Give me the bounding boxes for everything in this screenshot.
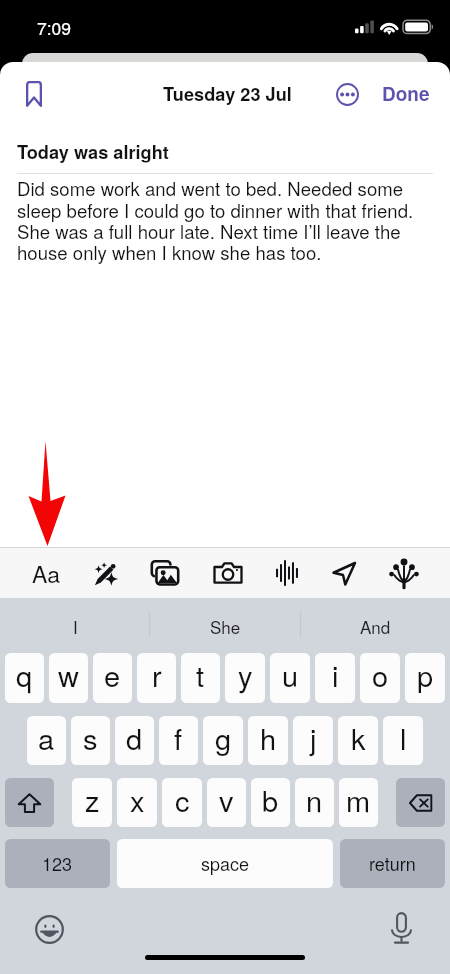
- button[interactable]: Mood: [382, 548, 426, 598]
- button[interactable]: Audio: [265, 548, 309, 598]
- button[interactable]: n: [295, 778, 334, 827]
- button[interactable]: Enhance: [84, 548, 128, 598]
- button[interactable]: Emoji: [29, 909, 69, 949]
- button[interactable]: a: [27, 716, 66, 765]
- staticText: return: [369, 850, 416, 876]
- button[interactable]: r: [137, 653, 176, 703]
- staticText: space: [201, 850, 250, 876]
- staticText: e: [104, 654, 121, 696]
- button[interactable]: 123: [5, 839, 110, 888]
- button[interactable]: u: [270, 653, 310, 703]
- staticText: s: [83, 717, 98, 759]
- staticText: o: [372, 654, 389, 696]
- staticText: Did some work and went to bed. Needed so…: [17, 175, 439, 265]
- button[interactable]: k: [338, 716, 378, 765]
- button[interactable]: return: [340, 839, 445, 888]
- button[interactable]: l: [383, 716, 423, 765]
- staticText: 7:09: [37, 15, 72, 40]
- button[interactable]: Camera: [206, 548, 250, 598]
- button[interactable]: space: [117, 839, 333, 888]
- staticText: Tuesday 23 Jul: [163, 81, 292, 107]
- button[interactable]: w: [49, 653, 88, 703]
- staticText: y: [238, 654, 253, 696]
- button[interactable]: And: [300, 598, 450, 653]
- staticText: g: [215, 717, 232, 759]
- button[interactable]: h: [248, 716, 288, 765]
- button[interactable]: d: [115, 716, 154, 765]
- staticText: d: [126, 717, 143, 759]
- button[interactable]: Location: [322, 548, 366, 598]
- button[interactable]: c: [162, 778, 202, 827]
- button[interactable]: Done: [378, 72, 434, 115]
- staticText: j: [310, 717, 317, 759]
- staticText: Today was alright: [17, 139, 169, 165]
- button[interactable]: She: [150, 598, 300, 653]
- staticText: 123: [42, 850, 73, 876]
- button[interactable]: o: [360, 653, 400, 703]
- button[interactable]: z: [72, 778, 112, 827]
- button[interactable]: b: [251, 778, 290, 827]
- staticText: k: [351, 717, 366, 759]
- button[interactable]: Delete: [396, 778, 445, 827]
- button[interactable]: g: [203, 716, 243, 765]
- button[interactable]: f: [159, 716, 198, 765]
- button[interactable]: m: [339, 778, 378, 827]
- staticText: a: [38, 717, 55, 759]
- staticText: t: [196, 654, 205, 696]
- staticText: b: [262, 779, 279, 821]
- button[interactable]: Text format: [24, 548, 68, 598]
- staticText: c: [175, 779, 190, 821]
- staticText: f: [174, 717, 183, 759]
- button[interactable]: x: [117, 778, 157, 827]
- staticText: u: [282, 654, 299, 696]
- staticText: w: [58, 654, 79, 696]
- button[interactable]: Shift: [5, 778, 54, 827]
- button[interactable]: j: [293, 716, 333, 765]
- button[interactable]: I: [0, 598, 150, 653]
- staticText: Aa: [32, 557, 61, 590]
- staticText: x: [130, 779, 145, 821]
- staticText: r: [152, 654, 162, 696]
- staticText: v: [219, 779, 234, 821]
- button[interactable]: Bookmark: [14, 74, 54, 114]
- button[interactable]: e: [93, 653, 132, 703]
- button[interactable]: Photos: [143, 548, 187, 598]
- staticText: p: [417, 654, 434, 696]
- staticText: l: [400, 717, 407, 759]
- staticText: Done: [382, 80, 430, 107]
- staticText: n: [306, 779, 323, 821]
- button[interactable]: Dictation: [381, 908, 421, 948]
- button[interactable]: q: [5, 653, 44, 703]
- staticText: h: [260, 717, 277, 759]
- button[interactable]: i: [315, 653, 355, 703]
- button[interactable]: v: [207, 778, 246, 827]
- staticText: i: [332, 654, 339, 696]
- button[interactable]: More options: [329, 76, 365, 112]
- staticText: And: [360, 614, 391, 638]
- button[interactable]: s: [71, 716, 110, 765]
- button[interactable]: y: [225, 653, 265, 703]
- button[interactable]: t: [181, 653, 220, 703]
- button[interactable]: p: [405, 653, 445, 703]
- staticText: She: [210, 614, 241, 638]
- staticText: I: [73, 614, 78, 638]
- staticText: m: [346, 779, 371, 821]
- staticText: q: [16, 654, 33, 696]
- staticText: z: [85, 779, 100, 821]
